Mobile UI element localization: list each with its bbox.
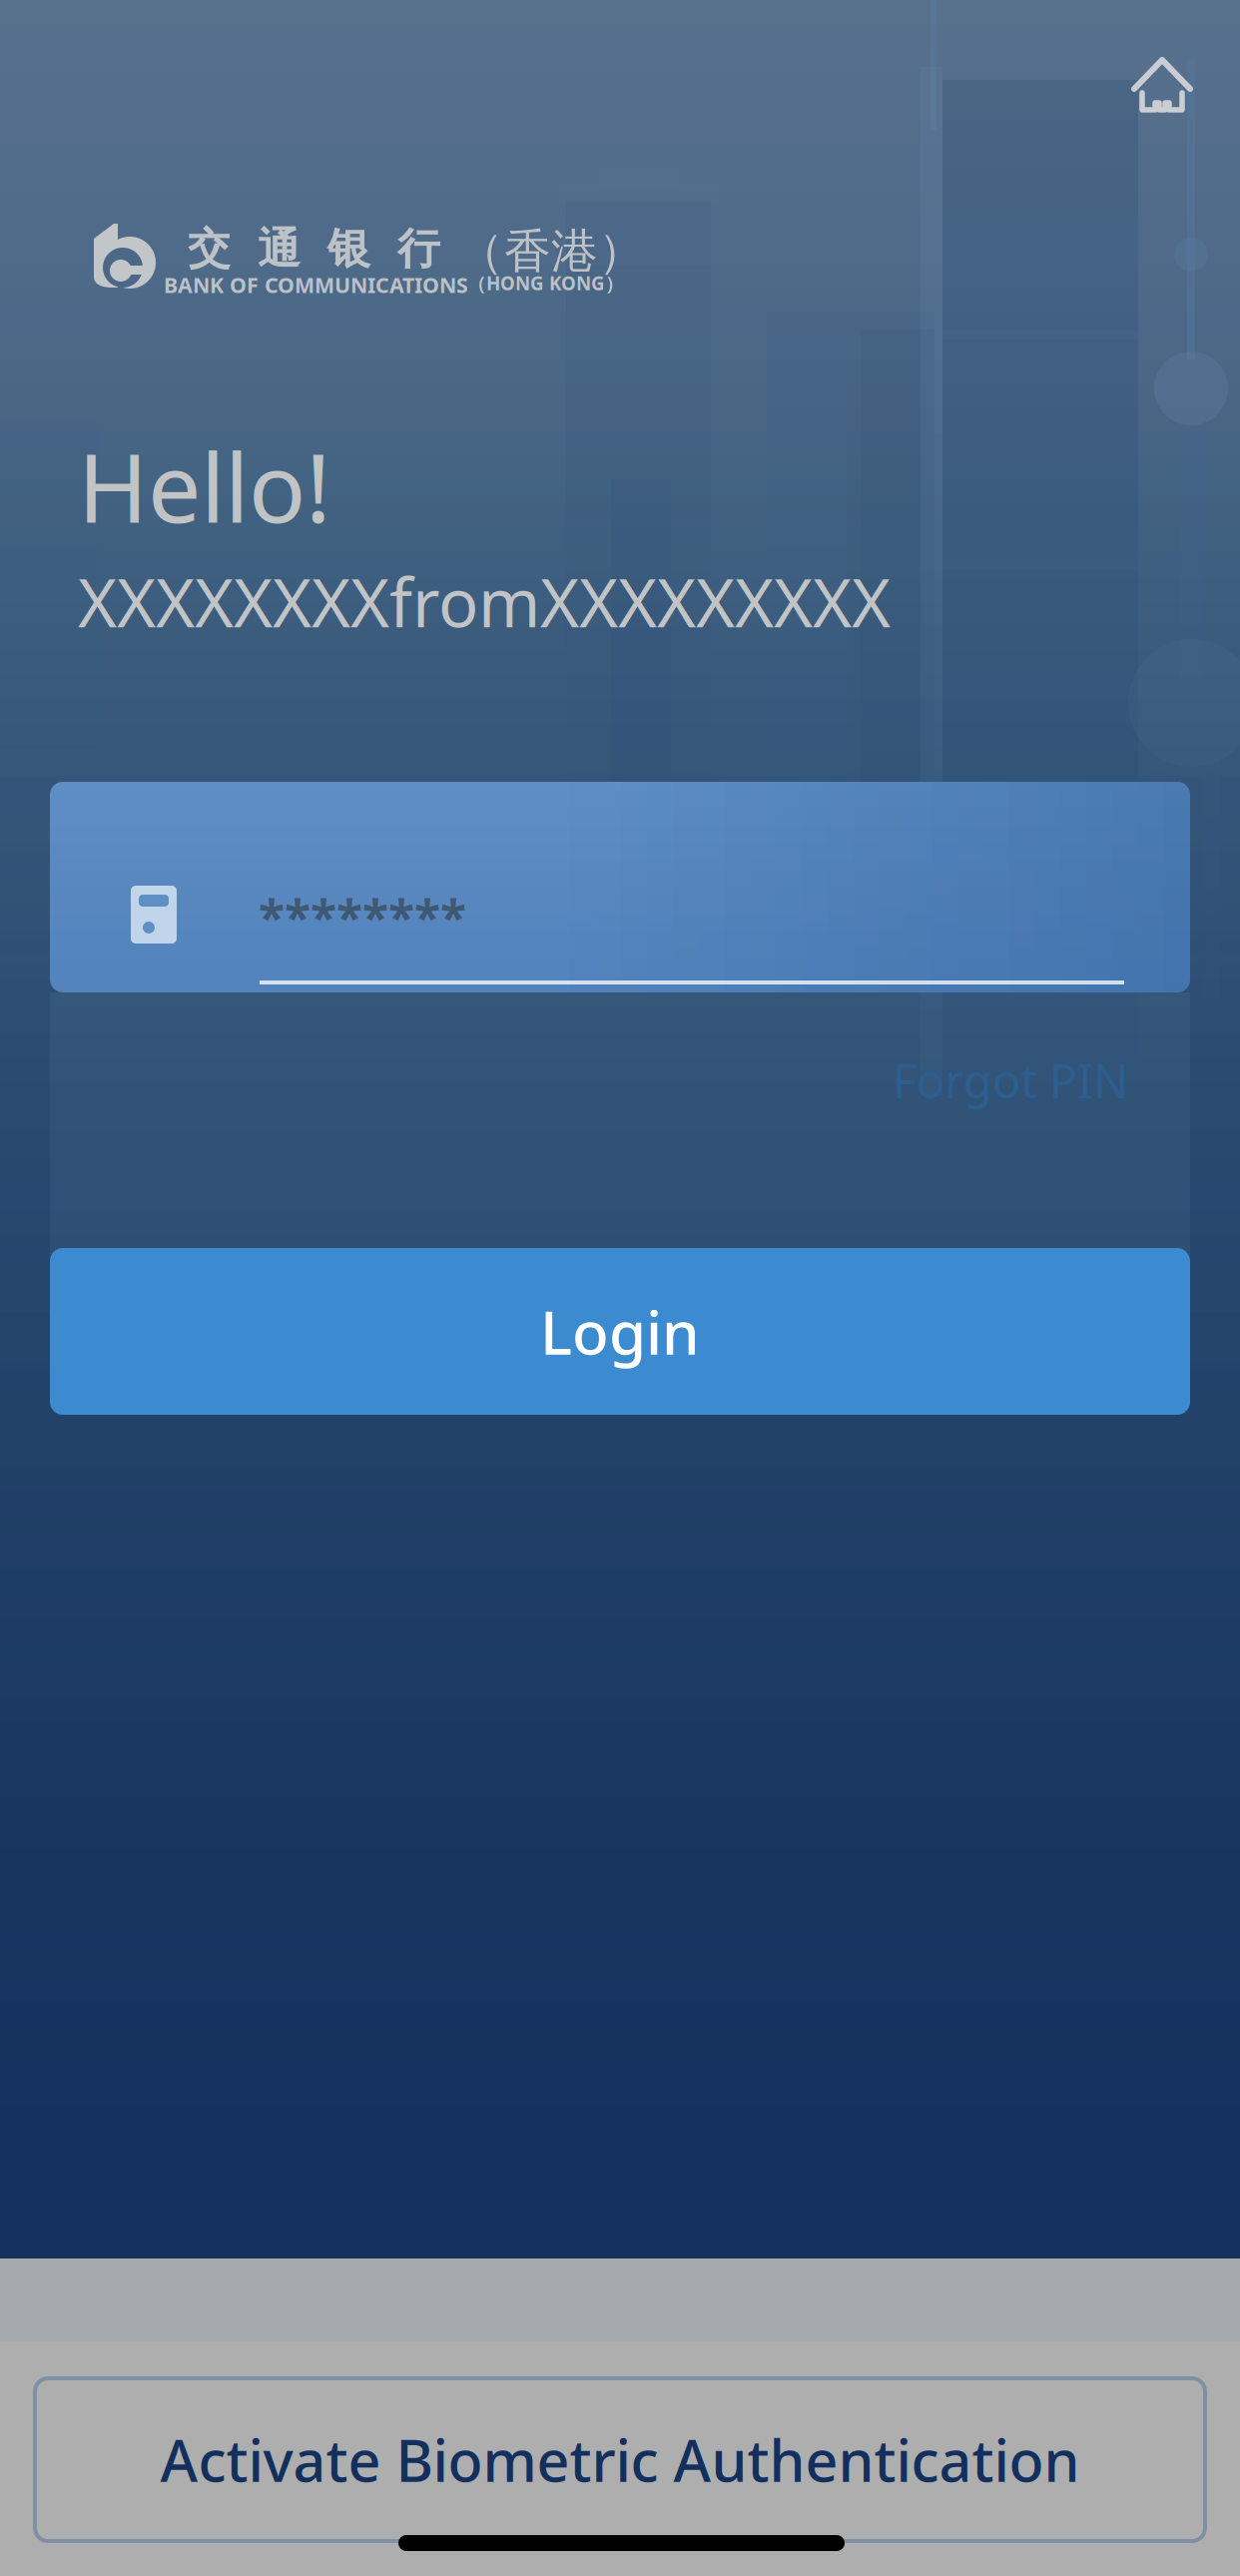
button[interactable]: PIN <box>50 782 1190 992</box>
staticText: （ <box>457 223 504 280</box>
staticText: 行 <box>397 223 440 275</box>
button[interactable]: Activate Biometric Authentication <box>35 2378 1205 2541</box>
staticText: Forgot PIN <box>893 1049 1128 1111</box>
staticText: Hello! <box>78 423 330 549</box>
staticText: （HONG KONG） <box>467 271 624 295</box>
staticText: XXXXXXXXfromXXXXXXXXX <box>78 557 891 645</box>
staticText: Login <box>540 1292 700 1371</box>
staticText: 银 <box>327 223 370 275</box>
staticText: Activate Biometric Authentication <box>160 2422 1080 2498</box>
staticText: 通 <box>258 223 301 275</box>
staticText: 港 <box>551 223 598 280</box>
button[interactable]: Home <box>1087 10 1237 160</box>
button[interactable]: Login <box>50 1248 1190 1415</box>
staticText: ******** <box>259 885 466 948</box>
staticText: ） <box>598 223 645 280</box>
staticText: 交 <box>188 223 231 275</box>
staticText: 香 <box>504 223 551 280</box>
staticText: BANK OF COMMUNICATIONS <box>164 271 468 299</box>
button[interactable]: Forgot PIN <box>861 1025 1160 1135</box>
